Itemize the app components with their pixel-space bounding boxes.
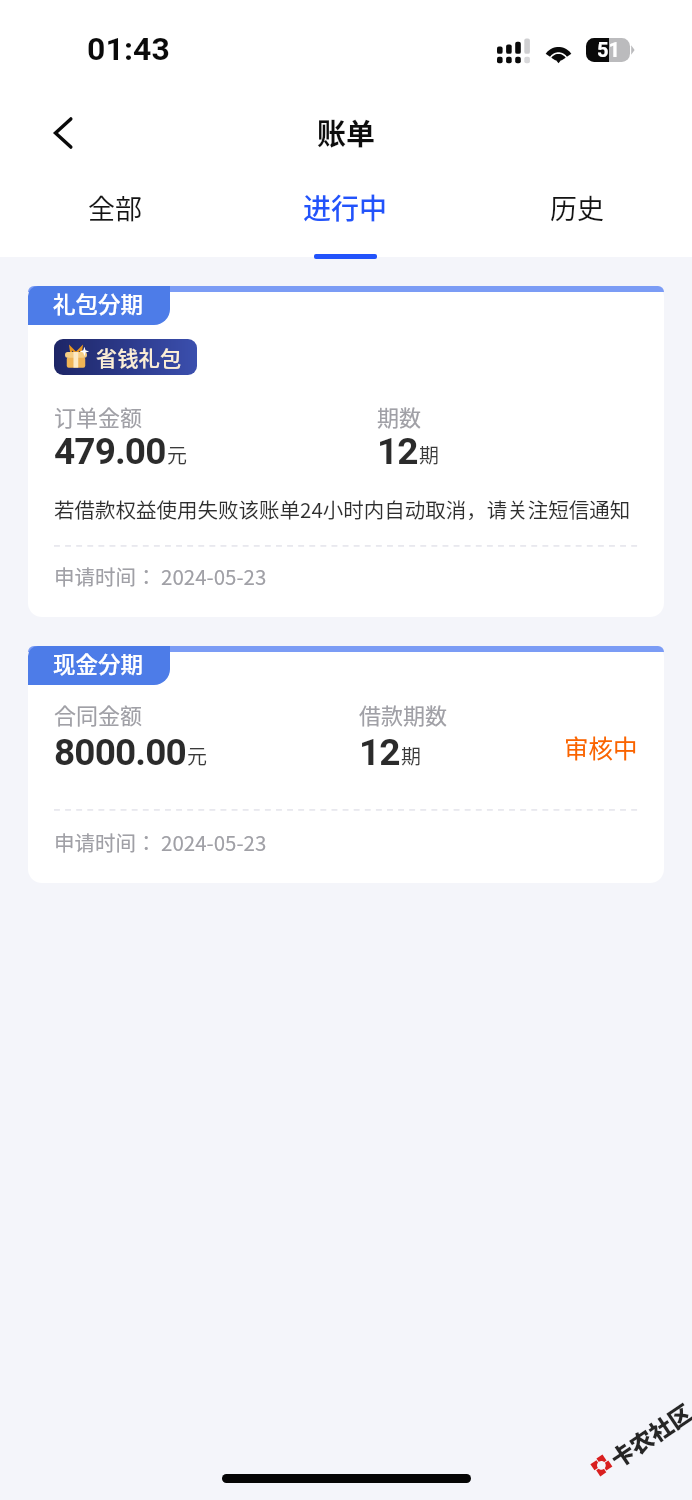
staticText: 借款期数 (359, 698, 448, 730)
staticText: 期 (419, 440, 439, 469)
staticText: 8000.00 (54, 731, 186, 774)
staticText: 51 (597, 38, 620, 61)
staticText: 进行中 (303, 187, 388, 228)
staticText: 合同金额 (54, 698, 143, 730)
staticText: 期 (401, 741, 421, 770)
staticText: 479.00 (54, 430, 166, 473)
staticText: 期数 (377, 400, 422, 432)
staticText: 申请时间： 2024-05-23 (54, 561, 267, 591)
button[interactable]: 全部 (0, 182, 230, 221)
staticText: 历史 (550, 188, 604, 227)
staticText: 申请时间： 2024-05-23 (54, 827, 267, 857)
staticText: 现金分期 (53, 647, 144, 680)
staticText: 01:43 (87, 30, 170, 68)
staticText: 账单 (0, 111, 692, 153)
staticText: 若借款权益使用失败该账单24小时内自动取消，请关注短信通知 (54, 494, 631, 524)
staticText: 审核中 (564, 730, 638, 765)
button[interactable]: 历史 (461, 182, 692, 221)
staticText: 卡农社区 (603, 1395, 692, 1471)
staticText: 元 (187, 741, 207, 770)
staticText: 订单金额 (54, 400, 143, 432)
staticText: 元 (167, 440, 187, 469)
button[interactable]: 进行中 (230, 182, 461, 223)
staticText: 礼包分期 (53, 287, 144, 320)
staticText: 12 (359, 731, 400, 774)
button[interactable]: Back (35, 105, 91, 161)
staticText: 12 (377, 430, 418, 473)
button[interactable]: 礼包分期 (28, 286, 664, 617)
staticText: 全部 (88, 188, 142, 227)
button[interactable]: 现金分期 (28, 646, 664, 883)
staticText: 省钱礼包 (96, 342, 182, 372)
